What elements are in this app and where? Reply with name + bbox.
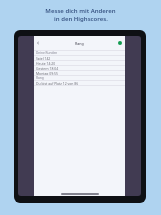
staticText: Rang <box>75 41 84 46</box>
staticText: in den Highscores. <box>54 15 108 23</box>
button[interactable]: Heute 14:20 <box>34 61 125 65</box>
button[interactable]: Back <box>35 40 41 46</box>
button[interactable]: Montag 09:55 <box>34 71 125 75</box>
button[interactable]: Du bist auf Platz 12 von 86 <box>34 81 125 85</box>
staticText: Messe dich mit Anderen <box>45 7 116 15</box>
staticText: Montag 09:55 <box>36 71 58 75</box>
staticText: Rang <box>36 76 44 80</box>
staticText: Spiel 142 <box>36 56 51 60</box>
button[interactable]: Spiel 142 <box>34 56 125 60</box>
staticText: Du bist auf Platz 12 von 86 <box>36 81 79 85</box>
button[interactable]: Gestern 18:04 <box>34 66 125 70</box>
staticText: Heute 14:20 <box>36 61 56 65</box>
button[interactable]: Online status <box>118 41 122 45</box>
staticText: Deine Runden <box>36 51 58 55</box>
staticText: Gestern 18:04 <box>36 66 59 70</box>
